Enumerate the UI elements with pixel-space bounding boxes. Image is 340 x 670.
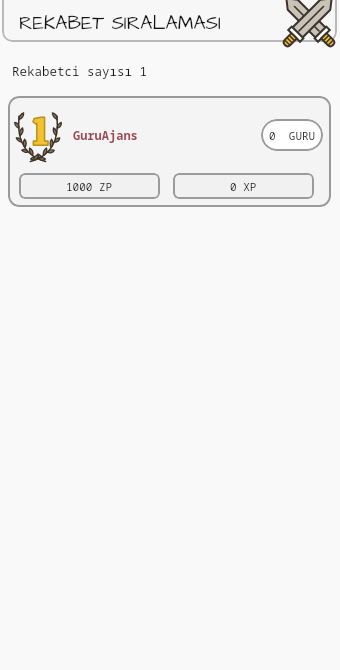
staticText: 1000 ZP [66,179,113,194]
button[interactable]: Crossed swords [259,0,340,71]
button[interactable]: 0 GURU [261,119,323,151]
button[interactable]: 0 XP [173,173,314,199]
staticText: GuruAjans [73,127,138,143]
staticText: 0 XP [230,179,257,194]
staticText: Rekabetci sayısı 1 [12,63,148,80]
staticText: REKABET SIRALAMASI [19,10,221,36]
button[interactable]: GuruAjans [8,96,331,207]
button[interactable]: 1000 ZP [19,173,160,199]
staticText: 0 GURU [269,128,316,143]
